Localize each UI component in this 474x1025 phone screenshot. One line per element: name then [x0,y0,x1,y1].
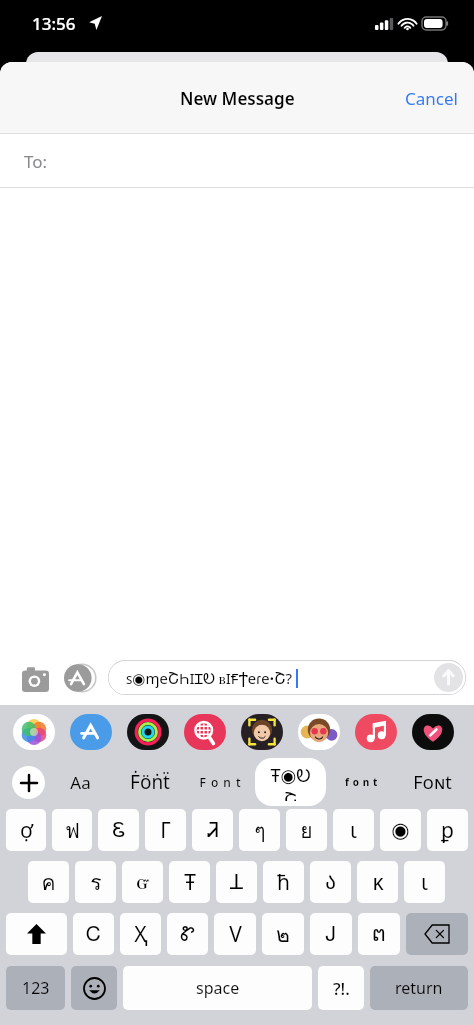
staticText: space [196,977,240,999]
button[interactable]: κ [357,861,398,903]
staticText: ◉ [391,818,410,842]
button[interactable]: ħ [263,861,304,903]
staticText: Ŧ◉ᎧՇ [266,763,315,801]
staticText: Ŧ [184,868,196,897]
button[interactable]: Memoji Stickers [297,713,341,751]
staticText: Ҳ [134,920,148,949]
staticText: ι [350,816,357,845]
button[interactable]: Add font [12,766,45,799]
button[interactable]: Backspace [406,913,468,955]
button[interactable]: Memoji [240,713,284,751]
button[interactable]: ꝑ [427,809,468,851]
button[interactable]: ค [28,861,69,903]
staticText: ร [90,866,102,899]
staticText: Ꮡ [180,924,195,945]
button[interactable]: ι [333,809,374,851]
button[interactable]: ꓕ [216,861,257,903]
button[interactable]: Γ [145,809,186,851]
staticText: Ꮯ [86,924,101,945]
button[interactable]: space [123,966,312,1010]
staticText: ꜱ◉ɱеՇҺӀꞮᎧ ᏼӀꞘϮеɾеꞏՇ? [126,668,293,688]
button[interactable]: ?!. [318,966,364,1010]
button[interactable]: Cancel [389,77,474,120]
button[interactable]: ย [286,809,327,851]
button[interactable]: App Store [69,713,113,751]
button[interactable]: Ҳ [120,913,161,955]
staticText: ?!. [333,977,350,1000]
staticText: ย [300,814,313,847]
button[interactable]: Camera [18,661,52,695]
button[interactable]: Music [354,713,398,751]
button[interactable]: return [370,966,468,1010]
button[interactable]: V [214,913,256,955]
staticText: Fᴏɴt [413,770,452,795]
button[interactable]: Ꭻ [310,913,352,955]
button[interactable]: ა [310,861,351,903]
staticText: Ꮨ [207,820,219,841]
button[interactable]: Photos [12,713,56,751]
button[interactable]: ◉ [380,809,421,851]
button[interactable]: Ŧ [169,861,210,903]
button[interactable]: ๒ [262,913,304,955]
staticText: return [395,977,443,999]
staticText: κ [372,868,384,897]
button[interactable]: 123 [6,966,65,1010]
staticText: ๆ [254,814,266,847]
staticText: V [229,920,242,949]
button[interactable]: Shift [6,913,67,955]
button[interactable]: Ꮛ [98,809,139,851]
button[interactable]: Ꮡ [167,913,208,955]
button[interactable]: Send [434,663,463,692]
button[interactable]: Aa [59,766,102,799]
button[interactable]: Ꮨ [192,809,233,851]
staticText: ฟ [65,814,80,847]
staticText: Ꭻ [326,924,336,945]
button[interactable]: ợ [6,809,46,851]
staticText: Cancel [405,87,458,110]
staticText: ꝑ [441,816,454,845]
staticText: F o n t [199,774,242,790]
button[interactable]: ร [75,861,116,903]
staticText: Aa [70,771,91,794]
staticText: ა [325,870,336,894]
staticText: 123 [22,977,50,999]
button[interactable]: Fᴏɴt [402,765,463,800]
button[interactable]: ຕ [358,913,400,955]
button[interactable]: f o n t [334,770,389,794]
staticText: Ḟöṅẗ [130,769,170,795]
button[interactable]: ฟ [52,809,92,851]
button[interactable]: Ꮯ [73,913,114,955]
staticText: ᏻ [136,872,150,893]
button[interactable]: Ŧ◉ᎧՇ [255,758,326,806]
button[interactable]: Apps [62,661,96,695]
button[interactable]: ꜱ◉ɱеՇҺӀꞮᎧ ᏼӀꞘϮеɾеꞏՇ? [108,660,466,695]
staticText: ợ [20,816,33,845]
button[interactable]: ι [404,861,445,903]
staticText: Γ [160,816,171,845]
button[interactable]: ๆ [239,809,280,851]
staticText: ħ [277,868,290,897]
staticText: ι [421,868,428,897]
button[interactable]: ᏻ [122,861,163,903]
button[interactable]: Fitness [126,713,170,751]
staticText: ຕ [372,922,386,946]
button[interactable]: Image Search [183,713,227,751]
button[interactable]: Emoji [71,966,117,1010]
button[interactable]: To: [0,134,474,188]
staticText: f o n t [345,775,378,789]
staticText: ๒ [276,918,290,951]
staticText: Ꮛ [112,820,126,841]
button[interactable]: Ḟöṅẗ [119,764,181,800]
button[interactable]: F o n t [188,769,253,795]
staticText: ꓕ [230,870,243,894]
staticText: 13:56 [32,12,76,35]
staticText: ค [41,866,56,899]
staticText: To: [24,150,48,173]
staticText: New Message [180,87,295,110]
button[interactable]: Digital Touch [411,713,455,751]
